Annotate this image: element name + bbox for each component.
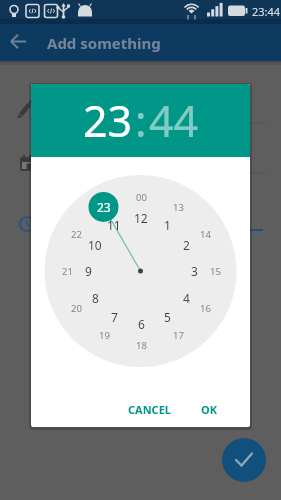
staticText: 15 [210, 265, 221, 278]
staticText: 8 [92, 290, 99, 306]
staticText: 5 [164, 309, 171, 325]
staticText: 13 [173, 201, 184, 214]
button[interactable]: CANCEL [120, 394, 179, 425]
staticText: 20 [71, 302, 82, 315]
staticText: 00 [136, 191, 147, 204]
staticText: Add something [47, 33, 161, 53]
staticText: 22 [71, 228, 82, 241]
staticText: OK [201, 402, 218, 417]
staticText: 21 [62, 265, 73, 278]
staticText: 19 [99, 329, 110, 342]
button[interactable]: OK [193, 394, 226, 425]
button[interactable] [222, 438, 266, 482]
staticText: 14 [200, 228, 211, 241]
staticText: 3 [191, 263, 198, 279]
staticText: 12 [134, 210, 148, 226]
staticText: 6 [138, 316, 145, 332]
button[interactable] [0, 24, 37, 61]
staticText: 1 [164, 217, 171, 233]
staticText: 4 [183, 290, 190, 306]
staticText: 9 [85, 263, 92, 279]
staticText: 16 [200, 302, 211, 315]
staticText: 44 [149, 91, 199, 150]
staticText: 23:44 [252, 4, 281, 19]
staticText: : [135, 91, 147, 150]
staticText: 17 [173, 329, 184, 342]
staticText: 18 [136, 339, 147, 352]
staticText: 10 [88, 237, 102, 253]
staticText: CANCEL [128, 402, 171, 417]
staticText: 7 [111, 309, 118, 325]
staticText: 23 [83, 91, 133, 150]
staticText: 2 [183, 237, 190, 253]
staticText: 23 [97, 199, 111, 215]
staticText: 11 [107, 217, 121, 233]
